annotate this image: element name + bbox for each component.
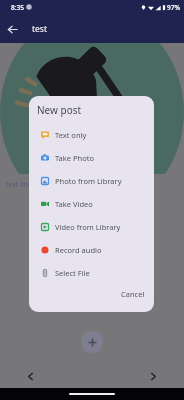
- staticText: Take Photo: [55, 153, 94, 163]
- button[interactable]: Take Photo: [29, 146, 154, 169]
- button[interactable]: Navigate up: [3, 20, 21, 38]
- staticText: Select File: [55, 268, 90, 278]
- button[interactable]: Cancel: [119, 287, 147, 301]
- staticText: Video from Library: [55, 222, 121, 232]
- button[interactable]: Back: [22, 368, 39, 385]
- staticText: 8:35: [11, 3, 24, 12]
- staticText: Take Video: [55, 199, 93, 209]
- button[interactable]: Text only: [29, 123, 154, 146]
- staticText: Text only: [55, 130, 87, 140]
- staticText: Photo from Library: [55, 176, 122, 186]
- button[interactable]: Record audio: [29, 238, 154, 261]
- button[interactable]: Video from Library: [29, 215, 154, 238]
- staticText: 97%: [167, 3, 180, 12]
- staticText: Cancel: [121, 289, 145, 299]
- button[interactable]: Photo from Library: [29, 169, 154, 192]
- staticText: New post: [37, 103, 82, 117]
- button[interactable]: Add post: [81, 331, 103, 353]
- staticText: Record audio: [55, 245, 102, 255]
- button[interactable]: Take Video: [29, 192, 154, 215]
- button[interactable]: Forward: [145, 368, 162, 385]
- staticText: test: [32, 23, 48, 35]
- button[interactable]: test link: [6, 180, 32, 190]
- button[interactable]: Select File: [29, 261, 154, 284]
